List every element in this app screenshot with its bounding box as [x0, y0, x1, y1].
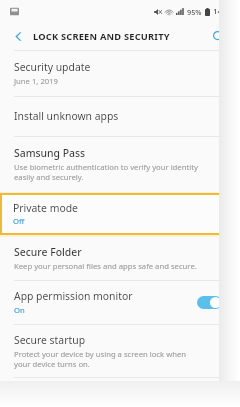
staticText: Secure startup — [14, 333, 86, 347]
staticText: On — [14, 305, 25, 315]
button[interactable]: Security update — [0, 51, 240, 96]
staticText: Use biometric authentication to verify y… — [14, 162, 198, 182]
button[interactable]: Private mode — [0, 193, 239, 235]
button[interactable]: Navigate up — [8, 26, 28, 46]
staticText: App permission monitor — [14, 289, 133, 303]
staticText: Private mode — [13, 201, 78, 215]
staticText: June 1, 2019 — [14, 76, 58, 86]
staticText: Samsung Pass — [14, 146, 86, 160]
staticText: Security update — [14, 60, 91, 74]
button[interactable]: Install unknown apps — [0, 97, 240, 136]
staticText: Keep your personal files and apps safe a… — [14, 261, 197, 271]
button[interactable]: Samsung Pass — [0, 137, 240, 192]
button[interactable]: Search — [207, 25, 229, 47]
button[interactable]: Secure startup — [0, 325, 240, 377]
staticText: 14:33 — [213, 6, 233, 17]
staticText: 95% — [187, 7, 202, 17]
staticText: Protect your device by using a screen lo… — [14, 349, 187, 369]
staticText: Secure Folder — [14, 245, 82, 259]
button[interactable]: Secure Folder — [0, 237, 240, 280]
staticText: Off — [13, 216, 25, 226]
staticText: LOCK SCREEN AND SECURITY — [33, 30, 170, 43]
staticText: Install unknown apps — [14, 109, 119, 123]
button[interactable]: App permission monitor — [0, 281, 240, 324]
